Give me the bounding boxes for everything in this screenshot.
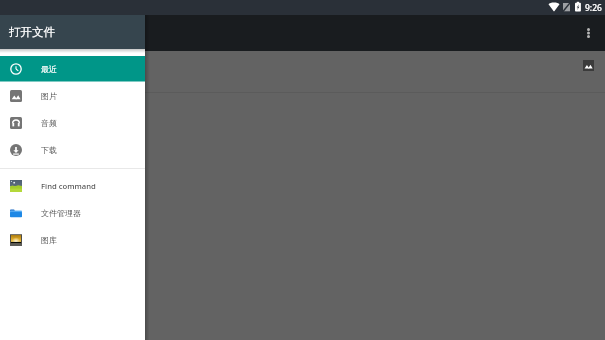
staticText: 图库	[41, 235, 57, 245]
button[interactable]: 图库	[0, 226, 145, 253]
staticText: 文件管理器	[41, 208, 81, 218]
button[interactable]: 最近	[0, 55, 145, 82]
button[interactable]: 图片	[0, 82, 145, 109]
staticText: 下载	[41, 145, 57, 155]
staticText: Find command	[41, 181, 96, 191]
button[interactable]: 下载	[0, 136, 145, 163]
staticText: 最近	[41, 64, 57, 74]
button[interactable]: 音频	[0, 109, 145, 136]
staticText: 打开文件	[9, 25, 55, 39]
button[interactable]: 文件管理器	[0, 199, 145, 226]
button[interactable]: Image	[583, 60, 594, 71]
button[interactable]: Find command	[0, 172, 145, 199]
staticText: 音频	[41, 118, 57, 128]
staticText: 9:26	[585, 2, 602, 14]
button[interactable]: More options	[574, 19, 602, 47]
staticText: 图片	[41, 91, 57, 101]
